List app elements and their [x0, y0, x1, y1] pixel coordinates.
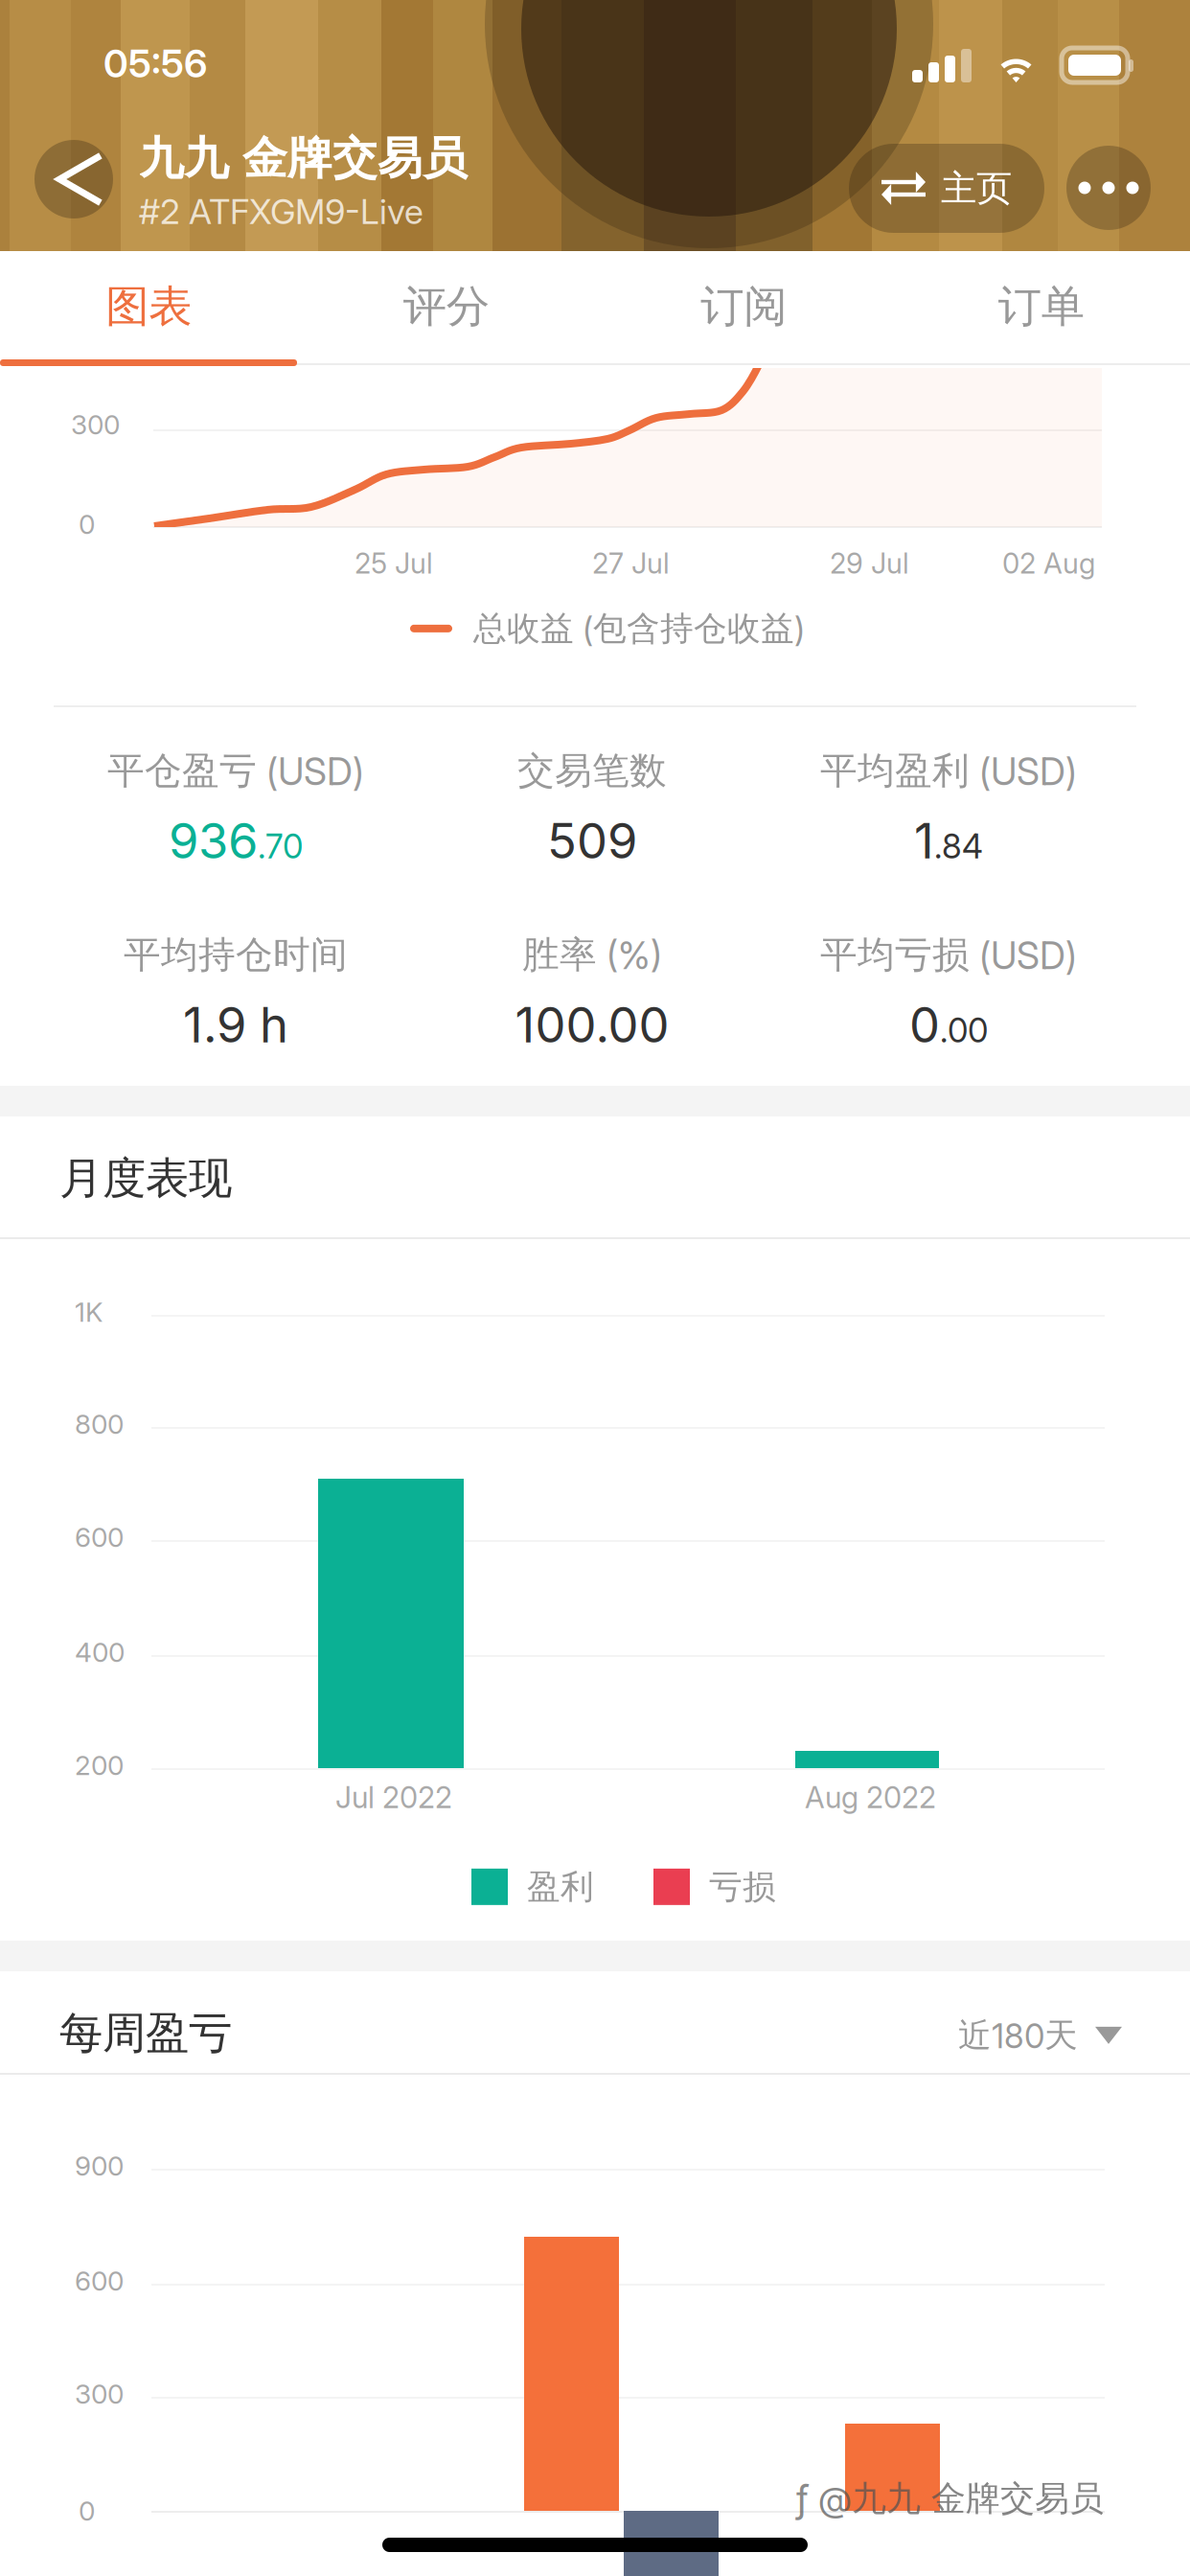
button[interactable]: 订阅: [595, 251, 892, 362]
staticText: 300: [75, 2378, 124, 2410]
staticText: 交易笔数: [517, 747, 667, 794]
staticText: Aug 2022: [805, 1780, 936, 1815]
staticText: 600: [75, 1521, 124, 1553]
staticText: 600: [75, 2265, 124, 2297]
staticText: 主页: [941, 166, 1012, 211]
staticText: 评分: [403, 279, 489, 334]
staticText: .84: [934, 826, 983, 866]
staticText: 936: [169, 811, 258, 870]
staticText: 1.9 h: [183, 995, 288, 1054]
staticText: 平均亏损 (USD): [820, 931, 1077, 978]
staticText: 100.00: [515, 995, 669, 1054]
button[interactable]: 图表: [0, 251, 297, 362]
staticText: 800: [75, 1408, 124, 1440]
button[interactable]: 订单: [892, 251, 1190, 362]
staticText: 0: [909, 995, 940, 1054]
staticText: 九九 金牌交易员: [139, 130, 468, 187]
staticText: 509: [547, 811, 637, 870]
staticText: 总收益 (包含持仓收益): [473, 608, 805, 649]
staticText: .00: [940, 1010, 988, 1050]
staticText: 05:56: [103, 40, 207, 87]
button[interactable]: 主页: [849, 144, 1044, 233]
button[interactable]: 近180天: [958, 2014, 1122, 2056]
staticText: #2 ATFXGM9-Live: [139, 191, 423, 232]
staticText: 订阅: [701, 279, 787, 334]
staticText: 月度表现: [59, 1151, 232, 1206]
staticText: 200: [75, 1749, 124, 1781]
staticText: 25 Jul: [355, 546, 433, 580]
staticText: .70: [258, 826, 303, 866]
staticText: 每周盈亏: [59, 2006, 232, 2061]
button[interactable]: More: [1066, 146, 1151, 230]
staticText: @九九 金牌交易员: [818, 2477, 1104, 2520]
staticText: 900: [75, 2150, 124, 2182]
staticText: 平均持仓时间: [124, 931, 348, 978]
staticText: 300: [71, 408, 120, 441]
staticText: 平仓盈亏 (USD): [107, 747, 364, 794]
staticText: 0: [79, 508, 95, 540]
staticText: ƒ: [795, 2475, 809, 2522]
staticText: 0: [79, 2495, 95, 2527]
staticText: 27 Jul: [592, 546, 670, 580]
staticText: 平均盈利 (USD): [820, 747, 1077, 794]
staticText: 29 Jul: [830, 546, 909, 580]
staticText: 02 Aug: [1002, 546, 1095, 580]
staticText: 1: [914, 811, 934, 870]
staticText: 盈利: [527, 1866, 594, 1908]
staticText: 图表: [106, 279, 192, 334]
staticText: 400: [75, 1636, 125, 1668]
staticText: Jul 2022: [335, 1780, 452, 1815]
staticText: 订单: [998, 279, 1084, 334]
staticText: 亏损: [709, 1866, 776, 1908]
staticText: 胜率 (%): [522, 931, 662, 978]
button[interactable]: Back: [34, 140, 113, 218]
button[interactable]: 评分: [297, 251, 595, 362]
staticText: 近180天: [958, 2014, 1078, 2056]
staticText: 1K: [75, 1296, 103, 1328]
